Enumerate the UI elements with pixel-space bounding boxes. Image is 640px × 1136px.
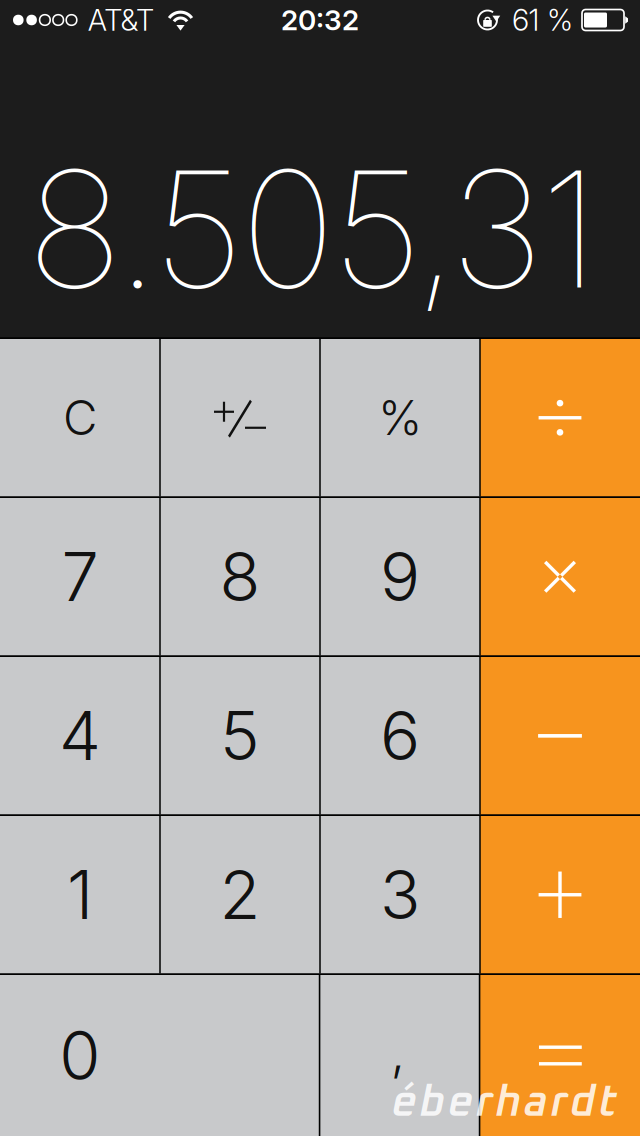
staticText: 8: [219, 536, 260, 617]
button[interactable]: Plus: [480, 816, 640, 973]
staticText: 3: [380, 854, 420, 935]
button[interactable]: Multiply: [480, 498, 640, 655]
button[interactable]: 9: [320, 498, 480, 655]
button[interactable]: Divide: [480, 339, 640, 496]
button[interactable]: ,: [320, 975, 479, 1136]
staticText: 61 %: [512, 2, 573, 38]
staticText: ,: [391, 1021, 405, 1083]
staticText: 6: [380, 695, 420, 776]
staticText: 8.505,31: [27, 131, 599, 326]
staticText: éberhardt: [390, 1081, 614, 1125]
staticText: 7: [61, 536, 98, 617]
button[interactable]: 4: [0, 657, 160, 814]
staticText: 9: [380, 536, 420, 617]
staticText: 0: [59, 1015, 100, 1096]
button[interactable]: Minus: [480, 657, 640, 814]
staticText: 1: [67, 854, 93, 935]
staticText: %: [378, 389, 422, 446]
button[interactable]: 2: [160, 816, 320, 973]
staticText: AT&T: [88, 2, 154, 38]
staticText: 20:32: [281, 3, 359, 37]
button[interactable]: Plus minus: [160, 339, 320, 496]
button[interactable]: 0: [0, 975, 319, 1136]
button[interactable]: 1: [0, 816, 160, 973]
button[interactable]: 3: [320, 816, 480, 973]
button[interactable]: 8: [160, 498, 320, 655]
button[interactable]: 5: [160, 657, 320, 814]
staticText: 2: [219, 854, 260, 935]
staticText: 5: [220, 695, 260, 776]
button[interactable]: C: [0, 339, 160, 496]
staticText: C: [63, 389, 97, 446]
button[interactable]: %: [320, 339, 480, 496]
button[interactable]: 7: [0, 498, 160, 655]
staticText: 4: [59, 695, 101, 776]
button[interactable]: Equals: [480, 975, 640, 1136]
button[interactable]: 6: [320, 657, 480, 814]
